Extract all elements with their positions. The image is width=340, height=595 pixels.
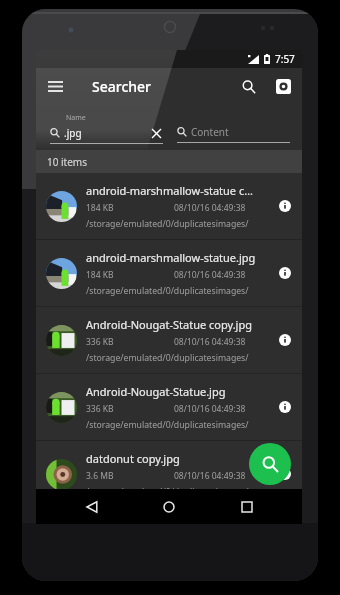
button[interactable]: Info	[274, 396, 296, 418]
staticText: datdonut copy.jpg	[86, 451, 180, 466]
staticText: Android-Nougat-Statue.jpg	[86, 384, 226, 399]
button[interactable]: Info	[274, 463, 296, 485]
staticText: /storage/emulated/0/duplicatesimages/	[86, 419, 249, 431]
staticText: 08/10/16 04:49:38	[174, 202, 246, 214]
staticText: 184 KB	[86, 202, 114, 214]
button[interactable]: datdonut copy.jpg	[36, 441, 302, 508]
staticText: Name	[66, 113, 86, 123]
staticText: .jpg	[64, 126, 82, 140]
staticText: Content	[191, 125, 229, 139]
staticText: 3.6 MB	[86, 470, 114, 482]
button[interactable]: Recents	[225, 489, 269, 524]
staticText: android-marshmallow-statue.jpg	[86, 250, 256, 265]
button[interactable]: Menu	[36, 68, 74, 105]
staticText: /storage/emulated/0/duplicatesimages/	[86, 285, 249, 297]
staticText: 336 KB	[86, 403, 114, 415]
staticText: 7:57	[275, 52, 295, 66]
button[interactable]: android-marshmallow-statue.jpg	[36, 240, 302, 307]
staticText: 10 items	[47, 155, 88, 169]
staticText: /storage/emulated/0/duplicatesimages/	[86, 352, 249, 364]
button[interactable]: Android-Nougat-Statue copy.jpg	[36, 307, 302, 374]
button[interactable]: Clear name	[150, 127, 163, 140]
button[interactable]: Info	[274, 195, 296, 217]
button[interactable]: Info	[274, 329, 296, 351]
staticText: Android-Nougat-Statue copy.jpg	[86, 317, 252, 332]
button[interactable]: Back	[70, 489, 114, 524]
button[interactable]: Home	[147, 489, 191, 524]
staticText: /storage/emulated/0/duplicatesimages/	[86, 486, 249, 498]
staticText: Searcher	[92, 77, 151, 96]
button[interactable]: Search files	[249, 443, 291, 485]
button[interactable]: Search	[232, 68, 266, 105]
staticText: 336 KB	[86, 336, 114, 348]
staticText: 08/10/16 04:49:38	[174, 403, 246, 415]
staticText: 08/10/16 04:49:38	[174, 336, 246, 348]
button[interactable]: Android-Nougat-Statue.jpg	[36, 374, 302, 441]
staticText: 08/10/16 04:49:38	[174, 470, 246, 482]
staticText: android-marshmallow-statue c…	[86, 183, 253, 198]
staticText: /storage/emulated/0/duplicatesimages/	[86, 218, 249, 230]
button[interactable]: android-marshmallow-statue c…	[36, 173, 302, 240]
button[interactable]: Screenshot	[266, 68, 300, 105]
button[interactable]: Info	[274, 262, 296, 284]
staticText: 184 KB	[86, 269, 114, 281]
staticText: 08/10/16 04:49:38	[174, 269, 246, 281]
